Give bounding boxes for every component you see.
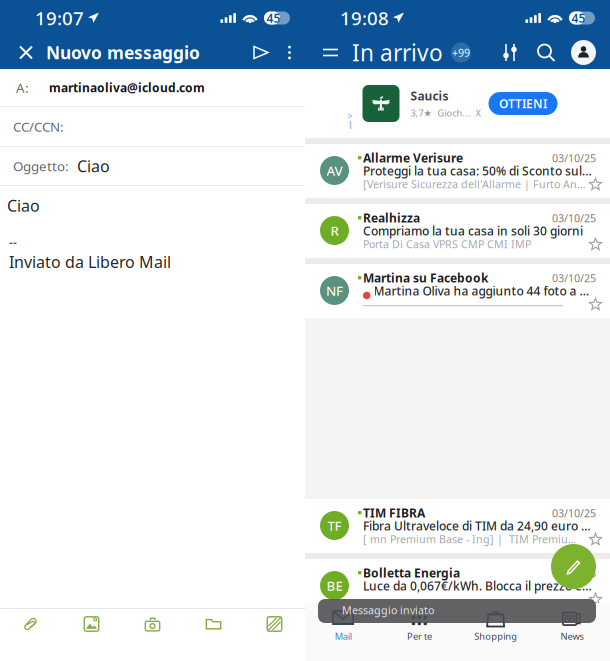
button[interactable]: Cartella (183, 609, 244, 639)
button[interactable]: OTTIENI (488, 92, 557, 115)
staticText: Porta Di Casa VPRS CMP CMI IMP (363, 237, 531, 251)
staticText: TF (327, 517, 341, 534)
staticText: Proteggi la tua casa: 50% di Sconto sull… (363, 163, 594, 179)
button[interactable]: Account (564, 36, 610, 69)
staticText: In arrivo (352, 37, 443, 67)
button[interactable]: Mail (305, 603, 381, 661)
staticText: Mail (335, 630, 352, 642)
button[interactable]: Immagine (61, 609, 122, 639)
staticText: 19:08 (340, 6, 389, 30)
staticText: Saucis (410, 88, 448, 104)
button[interactable]: NF (305, 264, 610, 318)
staticText: martinaoliva@icloud.com (49, 79, 205, 95)
staticText: BE (326, 577, 342, 594)
button[interactable]: Per te (381, 603, 457, 661)
staticText: Oggetto: (13, 157, 69, 175)
button[interactable]: Filtri (492, 36, 528, 69)
button[interactable]: R (305, 204, 610, 258)
button[interactable]: Cerca (528, 36, 564, 69)
button[interactable]: Invia (242, 36, 280, 68)
staticText: Martina su Facebook (363, 270, 488, 286)
staticText: OTTIENI (499, 95, 547, 111)
staticText: TIM FIBRA (363, 505, 425, 521)
button[interactable]: Chiudi (0, 36, 46, 68)
staticText: Shopping (474, 630, 517, 642)
staticText: News (560, 630, 583, 642)
button[interactable]: Scrivi (551, 544, 596, 589)
button[interactable]: Altre opzioni (280, 36, 305, 68)
staticText: 19:07 (35, 6, 84, 30)
button[interactable]: AV (305, 144, 610, 198)
staticText: Bolletta Energia (363, 565, 460, 581)
staticText: Ciao (77, 155, 110, 177)
button[interactable]: Menu (305, 36, 352, 69)
staticText: 03/10/25 (552, 506, 596, 520)
button[interactable]: BE (305, 559, 610, 613)
staticText: +99 (452, 45, 470, 60)
staticText: 03/10/25 (552, 271, 596, 285)
staticText: NF (326, 282, 343, 299)
staticText: Compriamo la tua casa in soli 30 giorni (363, 223, 583, 239)
staticText: Ciao (7, 195, 40, 216)
staticText: A: (16, 79, 29, 96)
staticText: Per te (407, 630, 432, 642)
staticText: 3,7★ Gioch... X (410, 107, 480, 119)
staticText: -- (9, 234, 17, 250)
staticText: Allarme Verisure (363, 150, 463, 166)
staticText: Luce da 0,067€/kWh. Blocca il prezzo ent… (363, 578, 594, 594)
staticText: [Verisure Sicurezza dell'Allarme | Furto… (363, 177, 585, 191)
staticText: Martina Oliva ha aggiunto 44 foto a una … (373, 283, 594, 299)
button[interactable]: Allega file (0, 609, 61, 639)
button[interactable]: Firma (244, 609, 305, 639)
staticText: Fibra Ultraveloce di TIM da 24,90 euro a… (363, 518, 594, 534)
staticText: 45 (266, 10, 280, 26)
staticText: Realhizza (363, 210, 420, 226)
staticText: AV (326, 162, 342, 179)
staticText: 03/10/25 (552, 211, 596, 225)
button[interactable]: Shopping (457, 603, 534, 661)
button[interactable]: Fotocamera (122, 609, 183, 639)
staticText: R (330, 222, 338, 239)
button[interactable]: News (534, 603, 610, 661)
staticText: CC/CCN: (13, 118, 64, 135)
button[interactable]: TF (305, 499, 610, 553)
staticText: Nuovo messaggio (46, 41, 200, 64)
staticText: 03/10/25 (552, 566, 596, 580)
staticText: Inviato da Libero Mail (9, 251, 171, 272)
staticText: 03/10/25 (552, 151, 596, 165)
staticText: 45 (571, 10, 585, 26)
staticText: [ mn Premium Base - Ing] | TIM Premium B… (363, 532, 585, 546)
staticText: Messaggio inviato (342, 603, 434, 617)
